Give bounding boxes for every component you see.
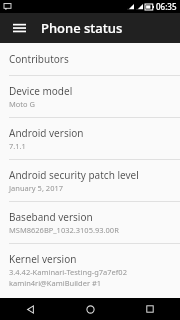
- button[interactable]: Baseband version: [0, 202, 180, 243]
- staticText: Kernel version: [9, 252, 77, 266]
- button[interactable]: Recent apps: [120, 298, 180, 320]
- staticText: January 5, 2017: [9, 183, 64, 193]
- staticText: kamin4ri@KamiBuilder #1: [9, 278, 102, 288]
- button[interactable]: Back: [0, 298, 60, 320]
- staticText: Android version: [9, 126, 84, 140]
- staticText: Moto G: [9, 99, 35, 109]
- staticText: 3.4.42-Kaminari-Testing-g7a7ef02: [9, 267, 127, 277]
- button[interactable]: Kernel version: [0, 244, 180, 298]
- staticText: 7.1.1: [9, 141, 26, 151]
- button[interactable]: Android security patch level: [0, 160, 180, 201]
- staticText: Android security patch level: [9, 168, 139, 182]
- staticText: MSM8626BP_1032.3105.93.00R: [9, 225, 119, 235]
- staticText: 06:35: [156, 1, 177, 12]
- staticText: Contributors: [9, 52, 69, 66]
- button[interactable]: Android version: [0, 118, 180, 159]
- staticText: Device model: [9, 84, 73, 98]
- button[interactable]: Home: [60, 298, 120, 320]
- button[interactable]: Contributors: [0, 43, 180, 75]
- staticText: Baseband version: [9, 210, 93, 224]
- button[interactable]: Open navigation menu: [8, 17, 30, 39]
- staticText: Phone status: [41, 19, 123, 37]
- button[interactable]: Device model: [0, 76, 180, 117]
